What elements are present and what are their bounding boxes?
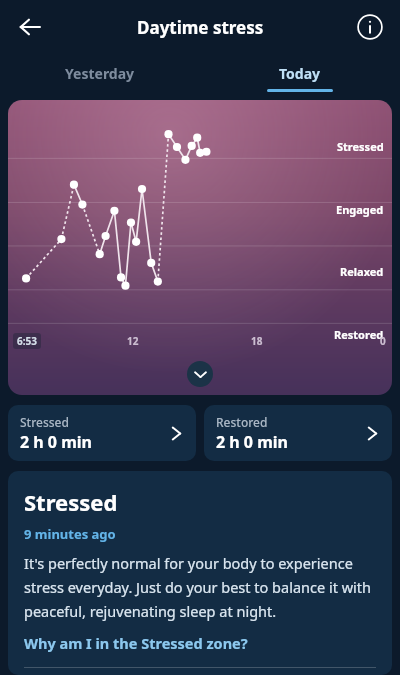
staticText: 18 [251, 334, 263, 348]
staticText: Stressed [337, 139, 384, 154]
staticText: Yesterday [65, 64, 135, 83]
staticText: Engaged [336, 202, 384, 217]
button[interactable]: Today [200, 54, 400, 92]
staticText: 12 [127, 334, 139, 348]
button[interactable]: Stressed [8, 405, 196, 461]
staticText: Today [279, 64, 321, 83]
staticText: 2 h 0 min [20, 431, 92, 453]
staticText: 9 minutes ago [24, 525, 116, 543]
staticText: Relaxed [340, 264, 384, 279]
staticText: 6:53 [17, 334, 37, 348]
button[interactable]: Yesterday [0, 54, 200, 92]
staticText: Stressed [24, 487, 118, 517]
staticText: 2 h 0 min [216, 431, 288, 453]
button[interactable]: Stressed [8, 100, 392, 395]
staticText: Restored [334, 327, 384, 342]
button[interactable]: Information [348, 5, 392, 49]
button[interactable]: Expand [187, 361, 213, 387]
button[interactable]: Back [8, 5, 52, 49]
button[interactable]: Why am I in the Stressed zone? [24, 633, 248, 653]
staticText: Stressed [20, 414, 69, 430]
staticText: Why am I in the Stressed zone? [24, 633, 248, 653]
staticText: It's perfectly normal for your body to e… [24, 553, 376, 621]
staticText: Restored [216, 414, 268, 430]
staticText: 0 [380, 334, 386, 348]
button[interactable]: Restored [204, 405, 392, 461]
staticText: Daytime stress [137, 16, 264, 39]
